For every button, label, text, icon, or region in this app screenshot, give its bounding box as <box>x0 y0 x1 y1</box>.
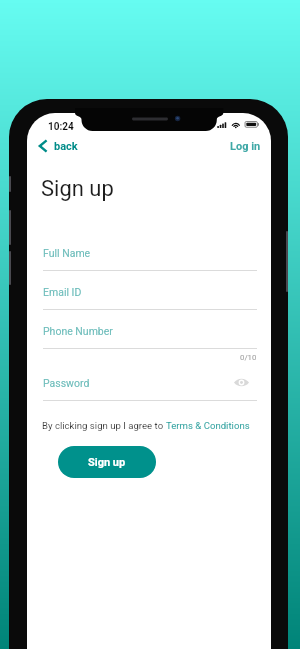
button[interactable]: Show password <box>233 376 249 388</box>
staticText: Log in <box>230 140 261 153</box>
button[interactable]: Email ID <box>43 284 257 310</box>
staticText: Phone Number <box>43 325 113 337</box>
staticText: 0/10 <box>240 353 257 362</box>
button[interactable]: Password <box>43 375 257 401</box>
staticText: Sign up <box>88 456 126 469</box>
staticText: 10:24 <box>48 121 74 133</box>
button[interactable]: Full Name <box>43 245 257 271</box>
staticText: back <box>54 140 78 153</box>
button[interactable]: back <box>34 136 83 156</box>
button[interactable]: Terms & Conditions <box>166 420 250 431</box>
staticText: Terms & Conditions <box>166 420 250 431</box>
button[interactable]: Sign up <box>58 446 156 478</box>
staticText: Password <box>43 377 90 389</box>
staticText: By clicking sign up I agree to <box>42 420 166 431</box>
staticText: Sign up <box>41 176 114 202</box>
button[interactable]: Log in <box>224 136 267 156</box>
button[interactable]: Phone Number <box>43 323 257 349</box>
staticText: Email ID <box>43 286 82 298</box>
staticText: Full Name <box>43 247 91 259</box>
